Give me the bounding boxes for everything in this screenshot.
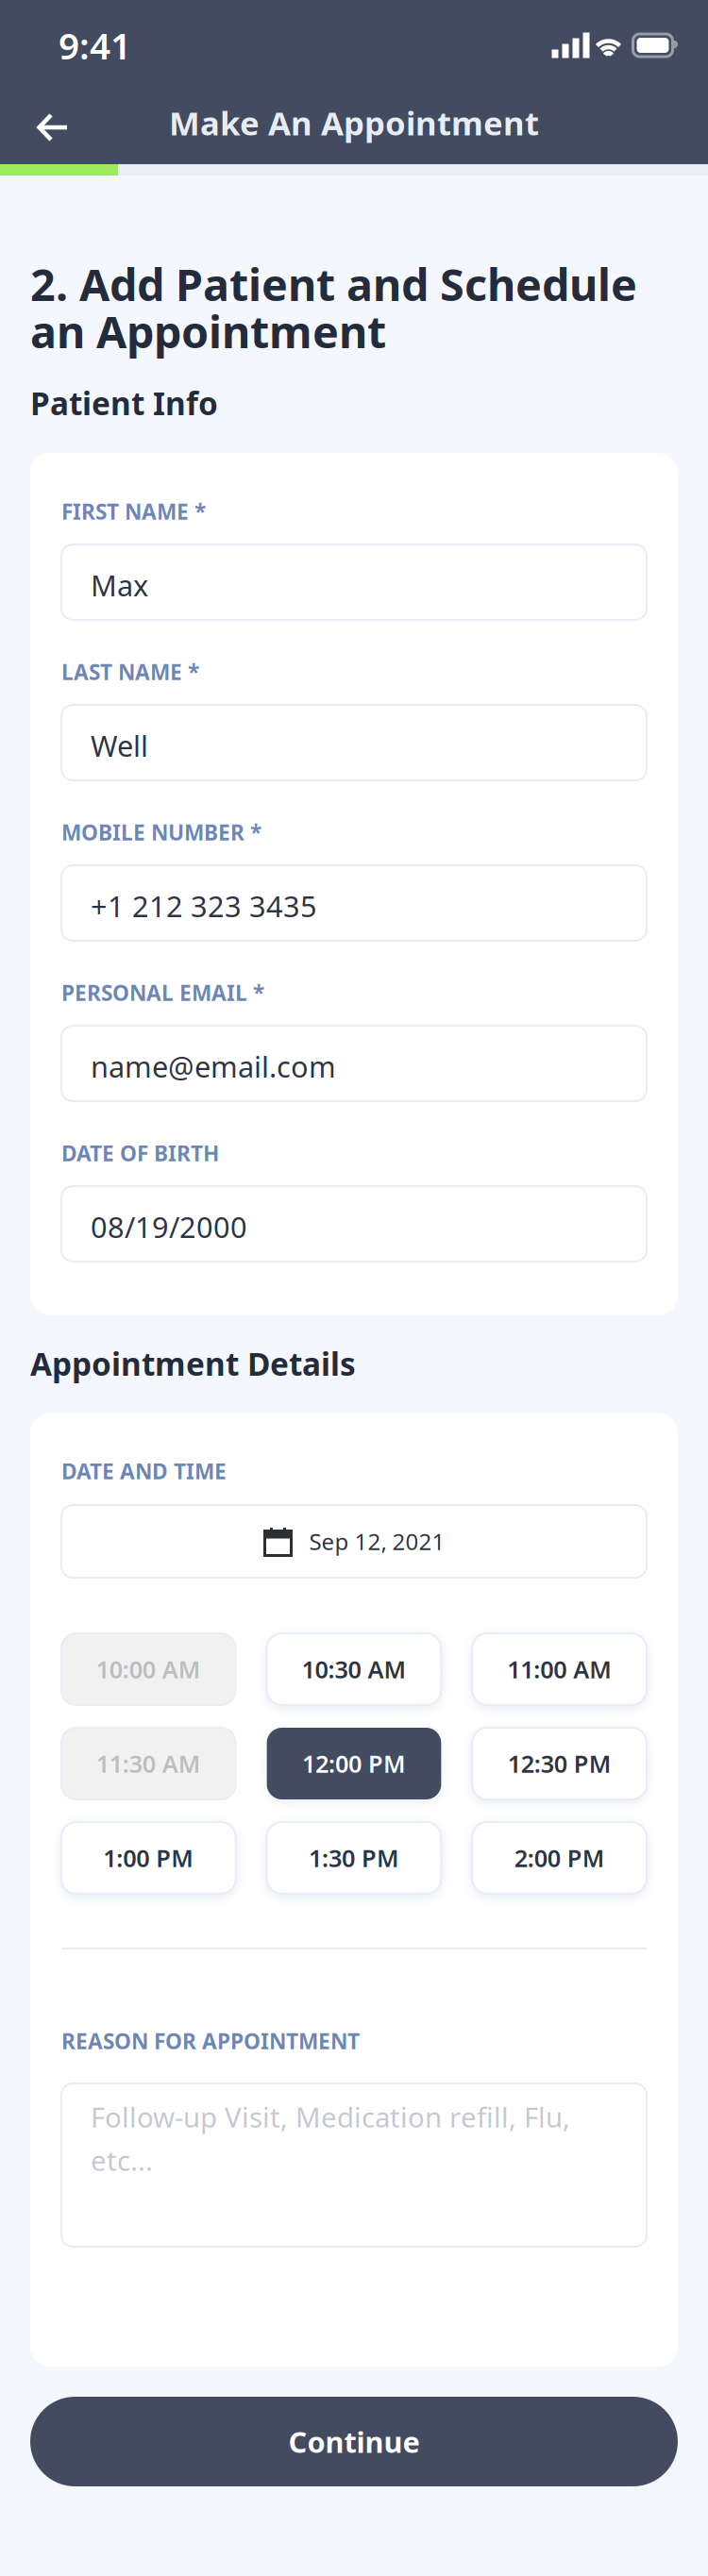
- staticText: Max: [91, 566, 148, 604]
- button[interactable]: 12:30 PM: [472, 1728, 647, 1799]
- staticText: +1 212 323 3435: [91, 887, 317, 925]
- staticText: MOBILE NUMBER *: [61, 818, 261, 846]
- staticText: LAST NAME *: [61, 658, 199, 686]
- staticText: 2. Add Patient and Schedule: [30, 255, 637, 313]
- staticText: 08/19/2000: [91, 1207, 247, 1246]
- staticText: 1:00 PM: [103, 1842, 194, 1874]
- staticText: 2:00 PM: [514, 1842, 605, 1874]
- staticText: DATE AND TIME: [61, 1457, 227, 1485]
- staticText: 1:30 PM: [309, 1842, 399, 1874]
- staticText: 11:00 AM: [507, 1653, 612, 1685]
- staticText: 10:30 AM: [302, 1653, 406, 1685]
- staticText: 9:41: [59, 21, 131, 69]
- button[interactable]: 12:00 PM: [267, 1728, 441, 1799]
- button[interactable]: Sep 12, 2021: [61, 1505, 647, 1578]
- button[interactable]: 11:30 AM: [61, 1728, 236, 1799]
- staticText: name@email.com: [91, 1047, 336, 1085]
- button[interactable]: Back: [22, 96, 84, 159]
- staticText: DATE OF BIRTH: [61, 1139, 219, 1167]
- staticText: Appointment Details: [30, 1343, 356, 1384]
- staticText: 12:00 PM: [302, 1748, 406, 1779]
- button[interactable]: 2:00 PM: [472, 1822, 647, 1894]
- staticText: Make An Appointment: [169, 101, 539, 144]
- staticText: 10:00 AM: [96, 1653, 201, 1685]
- staticText: 11:30 AM: [96, 1748, 201, 1779]
- staticText: Sep 12, 2021: [309, 1526, 445, 1556]
- staticText: 12:30 PM: [508, 1748, 611, 1779]
- button[interactable]: 1:00 PM: [61, 1822, 236, 1894]
- staticText: an Appointment: [30, 302, 386, 360]
- staticText: REASON FOR APPOINTMENT: [61, 2027, 360, 2055]
- staticText: Continue: [288, 2422, 420, 2461]
- button[interactable]: 1:30 PM: [267, 1822, 441, 1894]
- button[interactable]: 11:00 AM: [472, 1633, 647, 1705]
- button[interactable]: 10:00 AM: [61, 1633, 236, 1705]
- staticText: FIRST NAME *: [61, 497, 206, 526]
- staticText: Follow-up Visit, Medication refill, Flu,…: [91, 2099, 570, 2179]
- button[interactable]: Continue: [30, 2397, 678, 2486]
- staticText: Well: [91, 726, 148, 765]
- staticText: PERSONAL EMAIL *: [61, 978, 264, 1007]
- staticText: Patient Info: [30, 382, 218, 424]
- button[interactable]: 10:30 AM: [267, 1633, 441, 1705]
